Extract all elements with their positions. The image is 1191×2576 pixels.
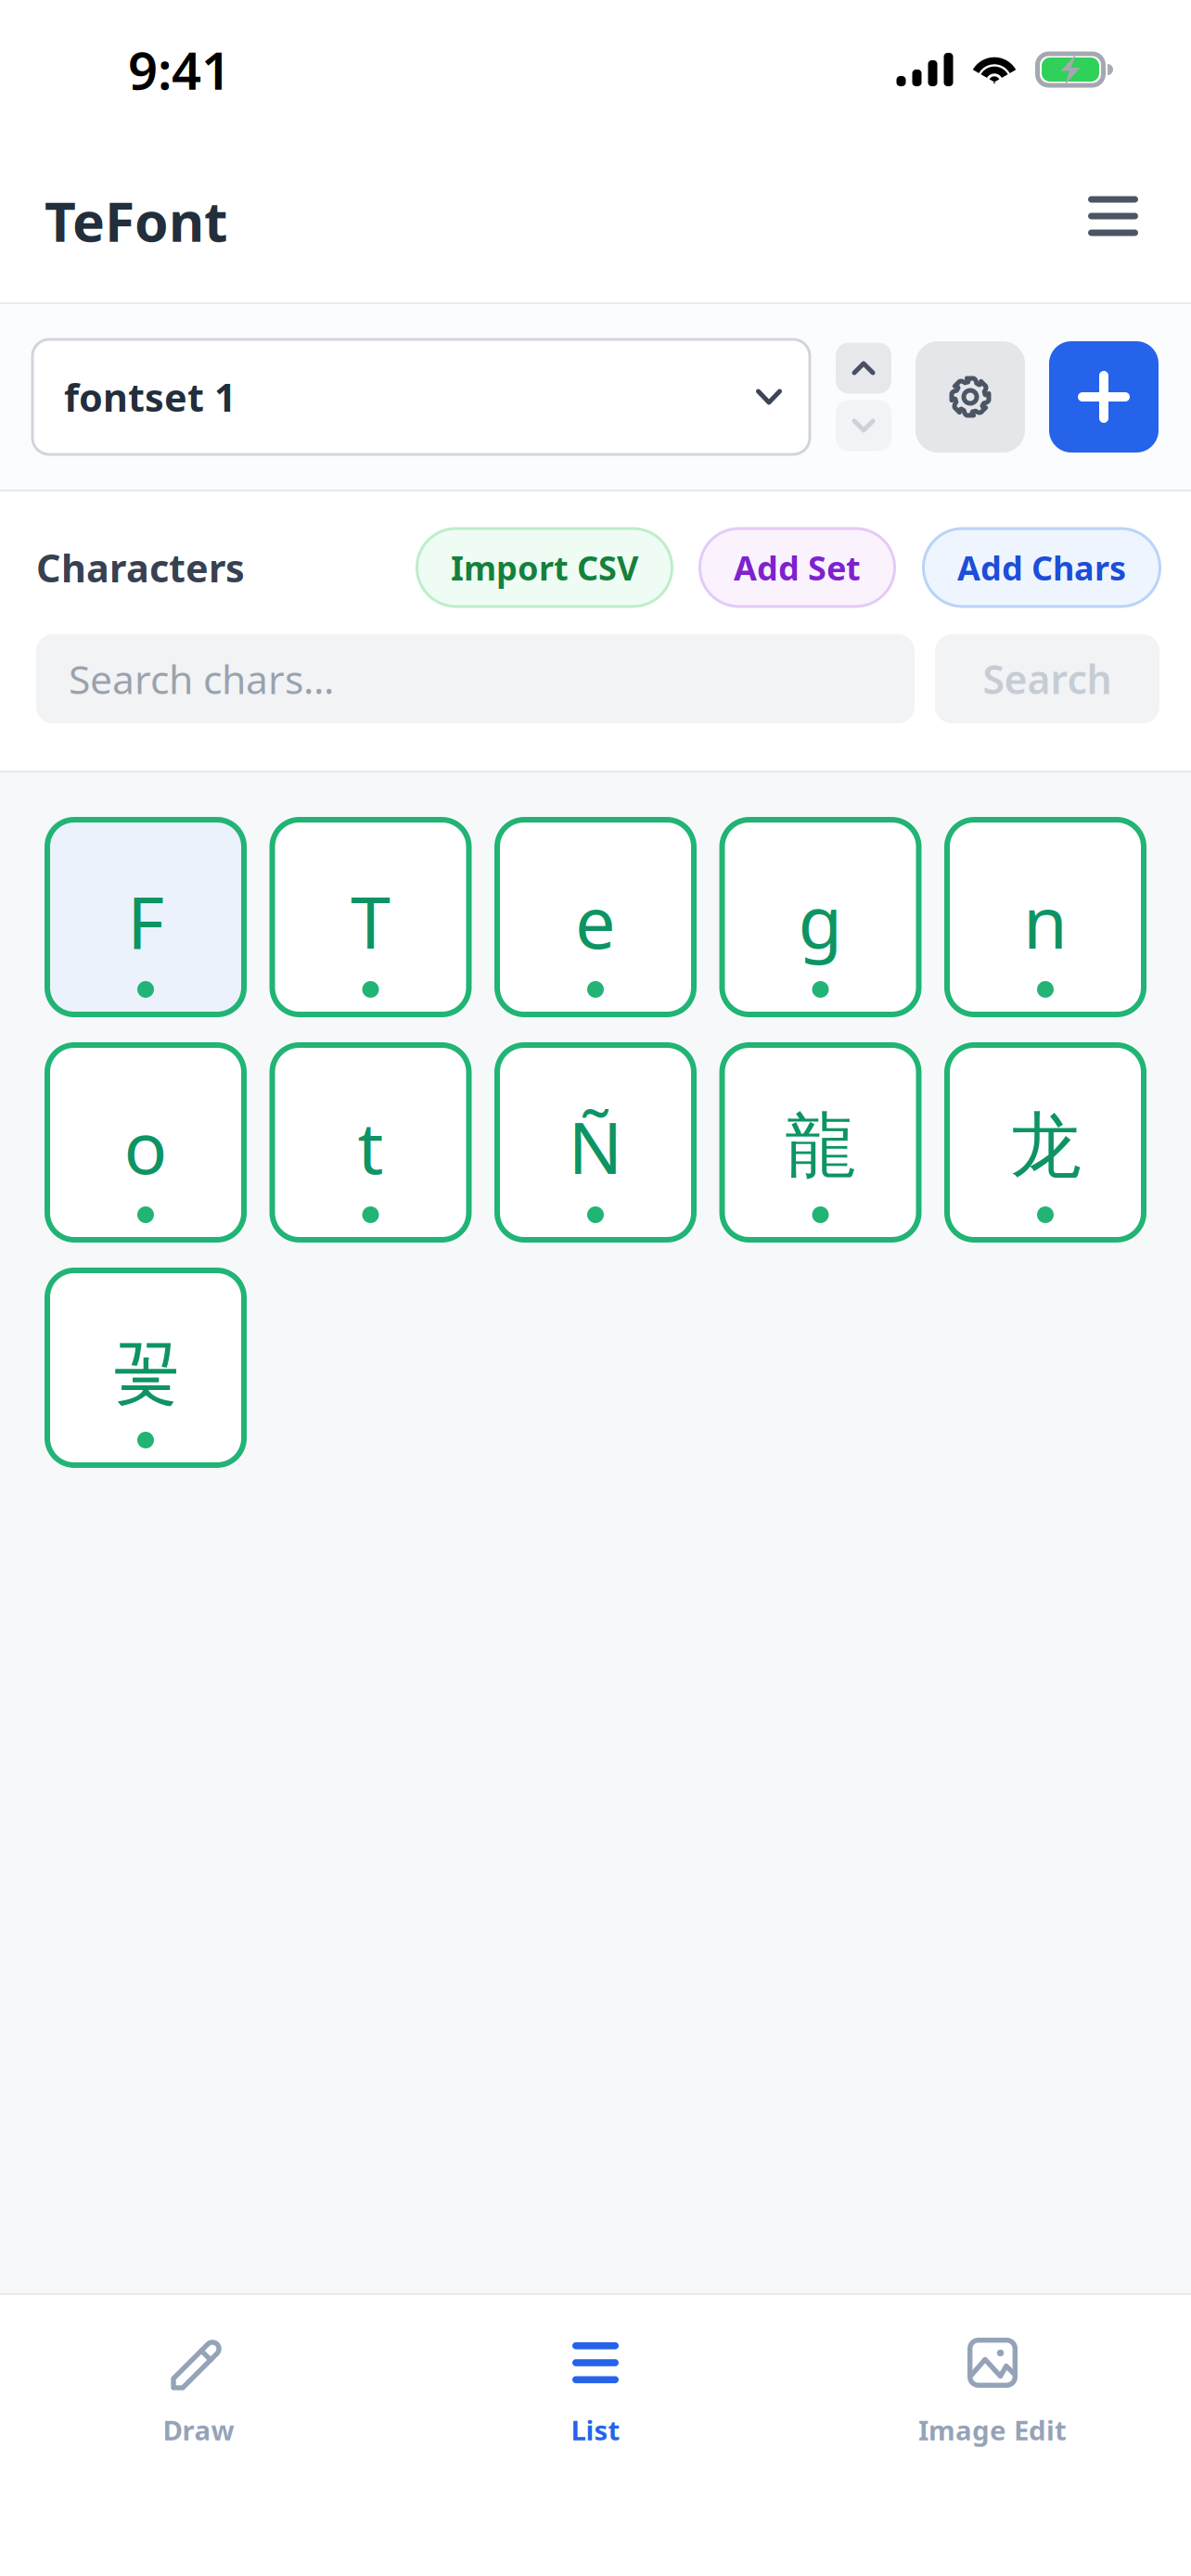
staticText: 꽃 [110,1327,181,1416]
staticText: fontset 1 [64,371,237,422]
button[interactable]: Menu [1073,181,1153,261]
staticText: TeFont [45,185,227,257]
staticText: List [571,2412,620,2448]
staticText: 龍 [785,1102,856,1190]
staticText: Add Set [734,545,861,590]
staticText: Import CSV [451,545,638,590]
staticText: Search chars... [69,653,334,705]
button[interactable]: Previous set [836,343,891,394]
button[interactable]: g [719,817,922,1017]
staticText: t [358,1099,384,1194]
button[interactable]: Add font set [1049,341,1159,453]
button[interactable]: 꽃 [45,1268,247,1468]
button[interactable]: Draw [0,2295,397,2457]
button[interactable]: Search [935,634,1159,723]
staticText: Ñ [568,1099,623,1194]
button[interactable]: e [494,817,697,1017]
button[interactable]: 龙 [944,1042,1146,1243]
staticText: 9:41 [128,35,231,104]
staticText: o [124,1099,167,1194]
button[interactable]: Add Chars [922,527,1161,608]
button[interactable]: Ñ [494,1042,697,1243]
staticText: F [127,873,164,968]
button[interactable]: o [45,1042,247,1243]
button[interactable]: t [269,1042,472,1243]
button[interactable]: List [397,2295,794,2457]
button[interactable]: Settings [916,341,1025,453]
button[interactable]: n [944,817,1146,1017]
staticText: Image Edit [918,2412,1067,2448]
staticText: Search [983,653,1112,705]
button[interactable]: Add Set [698,527,896,608]
button[interactable]: fontset 1 [32,339,810,454]
staticText: Add Chars [957,545,1126,590]
staticText: T [351,873,391,968]
staticText: Characters [36,542,245,593]
staticText: e [575,873,616,968]
button[interactable]: F [45,817,247,1017]
staticText: Draw [163,2412,234,2448]
button[interactable]: 龍 [719,1042,922,1243]
button[interactable]: Import CSV [416,527,673,608]
button[interactable]: Image Edit [794,2295,1191,2457]
button[interactable]: Next set [836,400,891,451]
staticText: n [1023,873,1068,968]
button[interactable]: Search chars... [36,634,915,723]
staticText: 龙 [1010,1102,1081,1190]
button[interactable]: T [269,817,472,1017]
staticText: g [798,873,843,968]
